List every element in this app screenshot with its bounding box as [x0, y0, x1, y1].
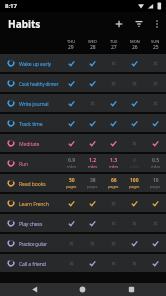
button[interactable] — [82, 74, 103, 92]
button[interactable] — [103, 114, 124, 132]
button[interactable]: 38 — [82, 174, 103, 192]
button[interactable] — [148, 12, 166, 36]
staticText: miles — [67, 164, 76, 169]
staticText: pages — [150, 184, 161, 189]
button[interactable] — [124, 74, 145, 92]
button[interactable]: Call a friend — [0, 254, 166, 272]
staticText: Cook healthy dinner — [19, 80, 59, 87]
staticText: TUE — [110, 39, 118, 44]
button[interactable]: 50 — [60, 174, 82, 192]
button[interactable]: Learn French — [0, 194, 166, 212]
staticText: 66 — [111, 177, 117, 184]
button[interactable]: Play chess — [0, 214, 166, 232]
staticText: 25 — [153, 44, 159, 51]
button[interactable] — [103, 214, 124, 232]
button[interactable] — [145, 94, 166, 112]
button[interactable] — [145, 254, 166, 272]
button[interactable] — [60, 214, 82, 232]
button[interactable] — [60, 134, 82, 152]
button[interactable] — [145, 114, 166, 132]
button[interactable]: Meditate — [0, 134, 166, 152]
button[interactable]: 1.2 — [82, 154, 103, 172]
button[interactable] — [124, 254, 145, 272]
button[interactable] — [82, 94, 103, 112]
button[interactable] — [145, 234, 166, 252]
button[interactable] — [82, 134, 103, 152]
button[interactable]: 0 — [124, 154, 145, 172]
button[interactable]: 100 — [124, 174, 145, 192]
button[interactable] — [129, 12, 148, 36]
button[interactable] — [103, 54, 124, 72]
button[interactable] — [124, 94, 145, 112]
button[interactable]: 0.9 — [60, 154, 82, 172]
button[interactable]: Run — [0, 154, 166, 172]
button[interactable] — [124, 134, 145, 152]
button[interactable] — [82, 214, 103, 232]
button[interactable] — [60, 94, 82, 112]
staticText: Meditate — [19, 140, 39, 147]
staticText: 0.9 — [68, 157, 76, 164]
button[interactable] — [124, 54, 145, 72]
button[interactable] — [107, 283, 156, 296]
button[interactable] — [82, 114, 103, 132]
button[interactable] — [60, 54, 82, 72]
button[interactable]: Cook healthy dinner — [0, 74, 166, 92]
button[interactable] — [145, 134, 166, 152]
staticText: Read books — [19, 180, 46, 187]
staticText: pages — [108, 184, 119, 189]
staticText: miles — [130, 164, 139, 169]
button[interactable] — [103, 74, 124, 92]
button[interactable] — [124, 194, 145, 212]
button[interactable]: 66 — [103, 174, 124, 192]
staticText: 1.2 — [89, 157, 97, 164]
button[interactable] — [145, 54, 166, 72]
button[interactable] — [103, 234, 124, 252]
staticText: pages — [87, 184, 98, 189]
button[interactable] — [145, 74, 166, 92]
button[interactable] — [58, 283, 107, 296]
staticText: Practice guitar — [19, 240, 48, 247]
staticText: 50 — [69, 177, 75, 184]
button[interactable] — [60, 114, 82, 132]
staticText: Call a friend — [19, 260, 46, 267]
button[interactable] — [60, 74, 82, 92]
button[interactable] — [60, 254, 82, 272]
button[interactable] — [60, 194, 82, 212]
staticText: miles — [109, 164, 118, 169]
button[interactable] — [124, 114, 145, 132]
button[interactable] — [82, 254, 103, 272]
staticText: 27 — [111, 44, 117, 51]
staticText: MON — [130, 39, 140, 44]
button[interactable] — [145, 214, 166, 232]
button[interactable] — [60, 234, 82, 252]
button[interactable]: Track time — [0, 114, 166, 132]
button[interactable] — [109, 12, 129, 36]
button[interactable] — [10, 283, 58, 296]
button[interactable]: 1.3 — [103, 154, 124, 172]
button[interactable] — [103, 134, 124, 152]
button[interactable] — [124, 234, 145, 252]
button[interactable]: Practice guitar — [0, 234, 166, 252]
staticText: pages — [66, 184, 77, 189]
button[interactable] — [82, 54, 103, 72]
staticText: 0 — [133, 157, 136, 164]
button[interactable]: 0.5 — [145, 154, 166, 172]
button[interactable] — [82, 194, 103, 212]
button[interactable] — [124, 214, 145, 232]
button[interactable]: 10 — [145, 174, 166, 192]
button[interactable] — [103, 194, 124, 212]
staticText: Track time — [19, 120, 43, 127]
staticText: THU — [67, 39, 76, 44]
button[interactable] — [145, 194, 166, 212]
button[interactable]: Write journal — [0, 94, 166, 112]
staticText: 29 — [68, 44, 74, 51]
button[interactable]: Wake up early — [0, 54, 166, 72]
staticText: Habits — [8, 17, 41, 31]
button[interactable]: Read books — [0, 174, 166, 192]
button[interactable] — [82, 234, 103, 252]
button[interactable] — [103, 94, 124, 112]
button[interactable] — [103, 254, 124, 272]
staticText: 38 — [90, 177, 96, 184]
staticText: 28 — [90, 44, 96, 51]
staticText: 100 — [130, 177, 139, 184]
